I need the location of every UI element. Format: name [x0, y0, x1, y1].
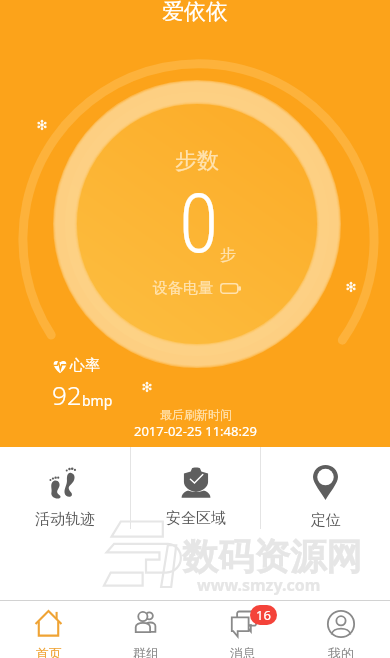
- staticText: 爱依依: [162, 0, 228, 26]
- staticText: 首页: [36, 645, 62, 658]
- button[interactable]: 安全区域: [131, 447, 260, 547]
- staticText: 定位: [311, 511, 341, 530]
- button[interactable]: 群组: [97, 601, 194, 658]
- staticText: 最后刷新时间: [160, 407, 232, 422]
- staticText: bmp: [82, 391, 113, 410]
- button[interactable]: 16: [194, 601, 292, 658]
- button[interactable]: 定位: [261, 447, 390, 547]
- staticText: 2017-02-25 11:48:29: [134, 422, 257, 440]
- button[interactable]: 活动轨迹: [0, 447, 130, 547]
- staticText: 0: [179, 177, 219, 272]
- staticText: 设备电量: [153, 279, 213, 298]
- staticText: 步: [220, 245, 236, 265]
- button[interactable]: 我的: [292, 601, 390, 658]
- staticText: 16: [256, 606, 271, 624]
- staticText: 步数: [175, 147, 219, 175]
- staticText: 我的: [328, 645, 354, 658]
- staticText: 群组: [133, 645, 159, 658]
- staticText: 心率: [70, 356, 100, 375]
- staticText: 消息: [230, 645, 256, 658]
- staticText: 92: [52, 377, 82, 412]
- staticText: www.smzy.com: [197, 574, 321, 596]
- staticText: 活动轨迹: [35, 510, 95, 529]
- staticText: 安全区域: [166, 509, 226, 528]
- button[interactable]: 首页: [0, 601, 97, 658]
- staticText: 数码资源网: [182, 534, 362, 579]
